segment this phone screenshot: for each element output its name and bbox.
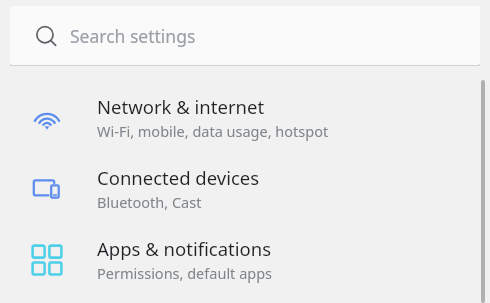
other: Connected devices xyxy=(32,174,62,204)
button[interactable]: Apps and notifications xyxy=(0,224,490,295)
other: Apps and notifications xyxy=(32,245,62,275)
button[interactable]: Network and internet xyxy=(0,82,490,153)
staticText: Connected devices xyxy=(97,165,260,190)
other: Search xyxy=(33,23,59,49)
staticText: Bluetooth, Cast xyxy=(97,192,202,212)
button[interactable]: Search xyxy=(10,6,480,65)
staticText: Permissions, default apps xyxy=(97,263,273,283)
other: Network and internet xyxy=(32,103,62,133)
button[interactable]: Connected devices xyxy=(0,153,490,224)
staticText: Search settings xyxy=(70,24,196,48)
staticText: Network & internet xyxy=(97,94,265,119)
staticText: Wi-Fi, mobile, data usage, hotspot xyxy=(97,121,329,141)
staticText: Apps & notifications xyxy=(97,236,272,261)
